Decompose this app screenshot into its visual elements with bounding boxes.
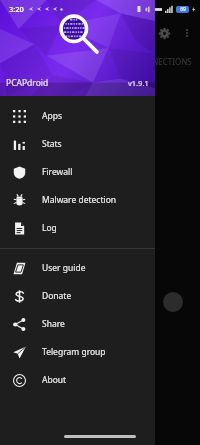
staticText: About [42, 374, 67, 386]
button[interactable]: User guide [0, 254, 155, 282]
staticText: Stats [42, 138, 62, 150]
button[interactable]: Settings [153, 22, 175, 44]
button[interactable]: CONNECTIONS [0, 56, 200, 67]
staticText: 69 [180, 6, 186, 13]
button[interactable]: Start capture [163, 292, 183, 312]
staticText: Firewall [42, 166, 73, 178]
staticText: User guide [42, 262, 86, 274]
staticText: Apps [42, 110, 62, 122]
staticText: v1.9.1 [128, 78, 149, 88]
staticText: PCAPdroid [6, 77, 49, 89]
button[interactable]: Stats [0, 130, 155, 158]
button[interactable]: Firewall [0, 158, 155, 186]
staticText: Donate [42, 290, 72, 302]
button[interactable]: PCAPdroid [0, 0, 155, 96]
button[interactable]: More options [177, 23, 197, 43]
button[interactable]: Share [0, 310, 155, 338]
staticText: Telegram group [42, 346, 106, 358]
staticText: Log [42, 222, 57, 234]
staticText: Malware detection [42, 194, 117, 206]
button[interactable]: Donate [0, 282, 155, 310]
staticText: CONNECTIONS [135, 56, 192, 67]
button[interactable]: Malware detection [0, 186, 155, 214]
staticText: Share [42, 318, 65, 330]
staticText: 3:20 [9, 4, 24, 14]
button[interactable]: Log [0, 214, 155, 242]
button[interactable]: Telegram group [0, 338, 155, 366]
button[interactable]: Apps [0, 102, 155, 130]
button[interactable]: About [0, 366, 155, 394]
